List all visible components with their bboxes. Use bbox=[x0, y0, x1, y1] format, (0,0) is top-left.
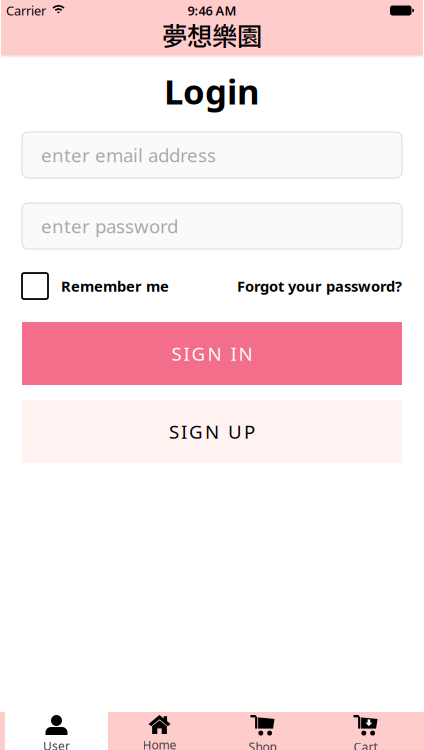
staticText: SIGN UP bbox=[169, 419, 255, 444]
button[interactable]: Forgot your password? bbox=[237, 276, 402, 296]
button[interactable]: SIGN UP bbox=[22, 400, 402, 463]
staticText: User bbox=[43, 738, 70, 750]
button[interactable]: User bbox=[5, 712, 108, 750]
staticText: Login bbox=[164, 68, 260, 114]
staticText: 夢想樂園 bbox=[162, 16, 262, 53]
button[interactable]: Shop bbox=[211, 712, 314, 750]
button[interactable]: SIGN IN bbox=[22, 322, 402, 385]
staticText: 9:46 AM bbox=[187, 2, 236, 19]
staticText: enter email address bbox=[41, 143, 216, 167]
button[interactable]: Cart bbox=[314, 712, 417, 750]
staticText: Carrier bbox=[6, 2, 46, 19]
staticText: enter password bbox=[41, 214, 178, 238]
staticText: Remember me bbox=[61, 276, 169, 296]
staticText: Shop bbox=[248, 739, 276, 750]
staticText: SIGN IN bbox=[171, 341, 252, 366]
button[interactable]: Remember me bbox=[22, 273, 169, 299]
staticText: Home bbox=[142, 737, 176, 750]
staticText: Cart bbox=[353, 739, 377, 750]
button[interactable]: Home bbox=[108, 712, 211, 750]
staticText: Forgot your password? bbox=[237, 276, 402, 296]
